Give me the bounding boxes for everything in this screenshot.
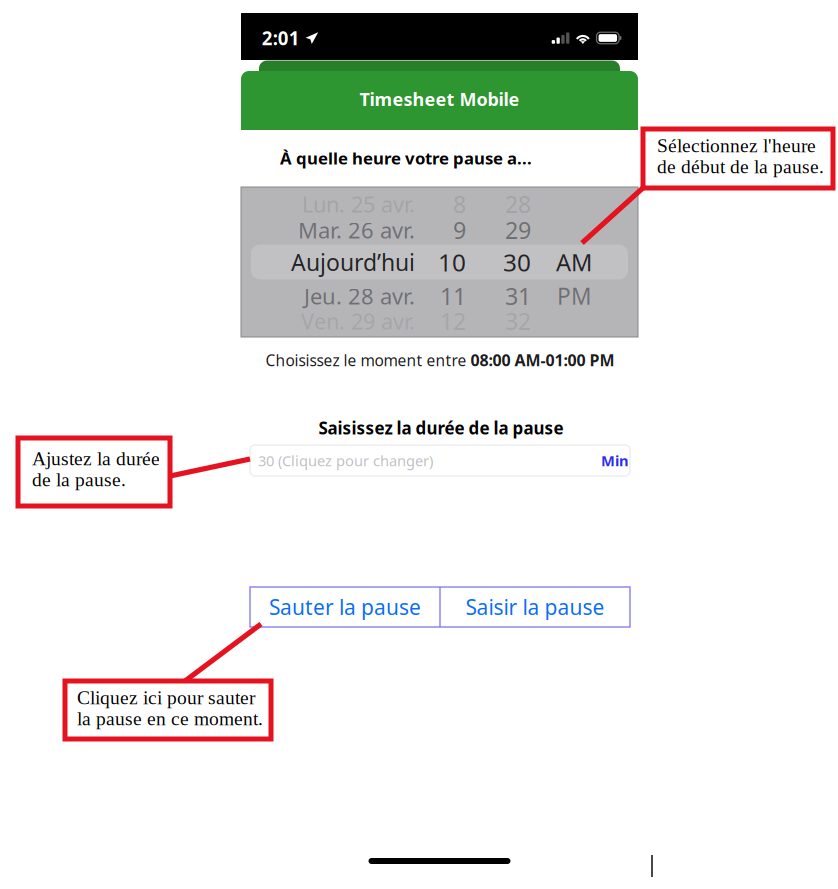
staticText: 10 [438,245,466,278]
staticText: Saisissez la durée de la pause [318,416,563,440]
staticText: Mar. 26 avr. [298,215,415,245]
staticText: de début de la pause. [657,156,824,178]
staticText: Cliquez ici pour sauter [77,687,255,709]
button[interactable]: Timesheet Mobile [349,84,529,114]
staticText: Min [601,450,629,470]
staticText: la pause en ce moment. [77,708,263,730]
staticText: 9 [453,214,466,246]
staticText: 32 [505,305,531,337]
staticText: Ajustez la durée [32,448,160,470]
staticText: 29 [505,214,531,246]
staticText: Jeu. 28 avr. [304,281,415,311]
staticText: 28 [505,188,531,220]
staticText: Saisir la pause [465,593,604,621]
button[interactable]: Saisir la pause [440,587,630,627]
staticText: 30 [503,245,531,278]
staticText: À quelle heure votre pause a... [280,147,532,169]
staticText: 12 [440,305,466,337]
staticText: 11 [440,280,466,312]
staticText: 8 [453,188,466,220]
button[interactable]: 30 (Cliquez pour changer) [250,445,630,476]
staticText: Aujourd’hui [291,246,415,278]
staticText: Choisissez le moment entre 08:00 AM-01:0… [265,349,614,371]
staticText: PM [557,281,592,311]
staticText: Ven. 29 avr. [301,306,415,336]
staticText: AM [556,246,592,278]
staticText: 2:01 [262,25,300,51]
staticText: de la pause. [32,469,126,491]
staticText: Lun. 25 avr. [302,189,415,219]
staticText: Timesheet Mobile [359,87,519,111]
staticText: 31 [505,280,531,312]
button[interactable]: Sauter la pause [250,587,440,627]
staticText: Sauter la pause [269,593,421,621]
staticText: Sélectionnez l'heure [657,135,816,157]
staticText: 30 (Cliquez pour changer) [258,450,433,470]
